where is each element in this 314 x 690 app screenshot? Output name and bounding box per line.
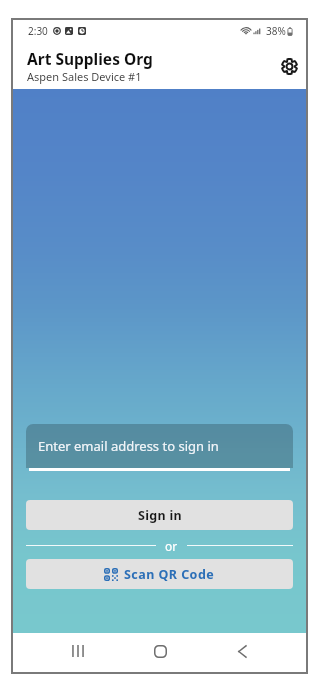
staticText: Art Supplies Org [27, 48, 153, 69]
button[interactable]: Scan QR Code [26, 559, 293, 589]
staticText: Aspen Sales Device #1 [27, 69, 142, 84]
button[interactable]: Enter email address to sign in [26, 424, 293, 469]
staticText: or [165, 538, 178, 552]
staticText: Enter email address to sign in [38, 437, 219, 455]
staticText: Scan QR Code [124, 566, 215, 583]
staticText: Sign in [138, 507, 182, 524]
button[interactable]: Sign in [26, 500, 293, 530]
button[interactable]: Recent apps [64, 641, 92, 661]
button[interactable]: Home [146, 641, 174, 661]
button[interactable]: Settings [272, 49, 306, 83]
staticText: 2:30 [28, 24, 48, 38]
button[interactable]: Back [228, 641, 256, 661]
staticText: 38% [266, 24, 286, 38]
